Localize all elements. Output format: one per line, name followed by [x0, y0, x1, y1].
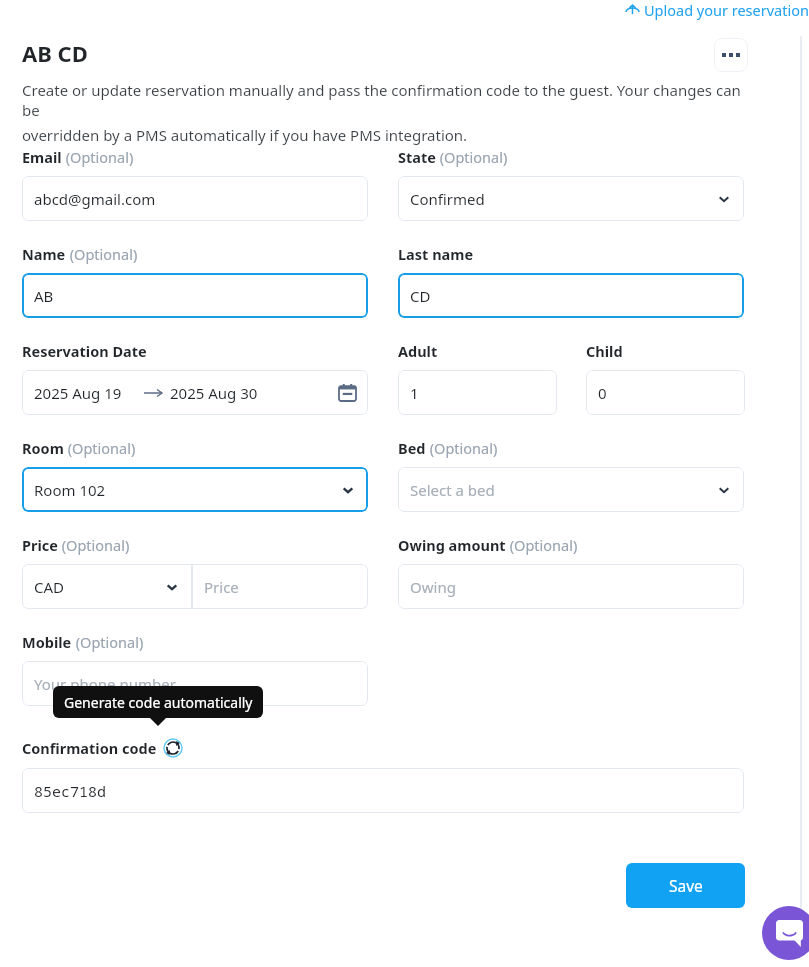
staticText: overridden by a PMS automatically if you… — [22, 125, 468, 145]
staticText: (Optional) — [426, 438, 498, 458]
staticText: 2025 Aug 19 — [34, 383, 122, 403]
staticText: 85ec718d — [34, 781, 107, 801]
staticText: (Optional) — [436, 147, 508, 167]
button[interactable]: Price — [192, 564, 368, 609]
staticText: Select a bed — [410, 480, 495, 500]
button[interactable]: Save — [626, 863, 745, 908]
staticText: 1 — [410, 383, 419, 403]
button[interactable]: CAD — [22, 564, 192, 609]
button[interactable]: 2025 Aug 19 — [22, 370, 368, 415]
staticText: Confirmation code — [22, 738, 157, 758]
staticText: Create or update reservation manually an… — [22, 80, 752, 120]
staticText: (Optional) — [62, 147, 134, 167]
staticText: State — [398, 147, 436, 167]
staticText: (Optional) — [66, 244, 138, 264]
button[interactable]: 85ec718d — [22, 768, 744, 813]
button[interactable]: 1 — [398, 370, 557, 415]
staticText: (Optional) — [64, 438, 136, 458]
button[interactable]: More options — [714, 38, 748, 72]
staticText: (Optional) — [72, 632, 144, 652]
staticText: Name — [22, 244, 66, 264]
button[interactable]: Confirmed — [398, 176, 744, 221]
staticText: CAD — [34, 577, 65, 597]
staticText: CD — [410, 286, 431, 306]
button[interactable]: abcd@gmail.com — [22, 176, 368, 221]
button[interactable]: Generate code automatically — [163, 738, 183, 758]
button[interactable]: Your phone number — [22, 661, 368, 706]
button[interactable]: Upload your reservations — [624, 0, 809, 24]
staticText: Owing — [410, 577, 456, 597]
staticText: Save — [669, 875, 703, 896]
staticText: Adult — [398, 341, 438, 361]
button[interactable]: Open chat — [762, 906, 809, 960]
button[interactable]: AB — [22, 273, 368, 318]
staticText: 0 — [598, 383, 607, 403]
staticText: AB — [34, 286, 54, 306]
staticText: Price — [22, 535, 58, 555]
button[interactable]: 0 — [586, 370, 745, 415]
staticText: (Optional) — [58, 535, 130, 555]
staticText: Room 102 — [34, 480, 106, 500]
staticText: Reservation Date — [22, 341, 147, 361]
staticText: 2025 Aug 30 — [170, 383, 258, 403]
staticText: Mobile — [22, 632, 72, 652]
staticText: AB CD — [22, 38, 88, 68]
button[interactable]: CD — [398, 273, 744, 318]
button[interactable]: Select a bed — [398, 467, 744, 512]
staticText: Price — [204, 577, 239, 597]
staticText: (Optional) — [506, 535, 578, 555]
staticText: Owing amount — [398, 535, 506, 555]
staticText: Upload your reservations — [644, 0, 809, 20]
staticText: Confirmed — [410, 189, 485, 209]
button[interactable]: Room 102 — [22, 467, 368, 512]
staticText: Child — [586, 341, 623, 361]
staticText: abcd@gmail.com — [34, 189, 156, 209]
staticText: Room — [22, 438, 64, 458]
staticText: Your phone number — [34, 674, 176, 694]
button[interactable]: Owing — [398, 564, 744, 609]
staticText: Email — [22, 147, 62, 167]
staticText: Last name — [398, 244, 474, 264]
staticText: Generate code automatically — [64, 693, 253, 712]
staticText: Bed — [398, 438, 426, 458]
